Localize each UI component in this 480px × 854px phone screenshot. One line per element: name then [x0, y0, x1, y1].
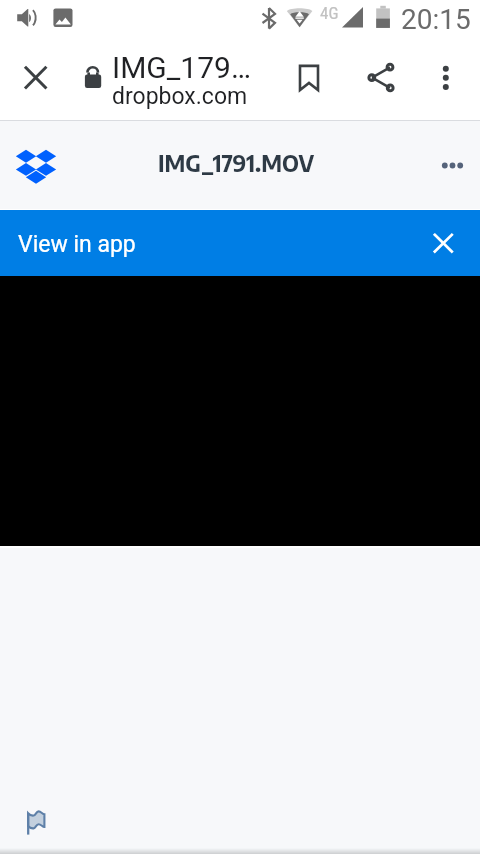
staticText: dropbox.com [112, 83, 248, 110]
staticText: View in app [18, 231, 136, 258]
button[interactable]: More options [420, 52, 472, 104]
staticText: IMG_1791.MOV [158, 148, 315, 177]
button[interactable]: Close [10, 52, 62, 104]
button[interactable]: Bookmark [283, 52, 335, 104]
staticText: IMG_179… [112, 50, 251, 85]
button[interactable]: Report [18, 805, 54, 841]
button[interactable] [0, 210, 480, 276]
staticText: 4G [320, 3, 339, 23]
button[interactable]: File options [428, 142, 476, 190]
button[interactable]: Share [355, 52, 407, 104]
staticText: 20:15 [401, 3, 471, 36]
button[interactable]: Dismiss [419, 219, 467, 267]
